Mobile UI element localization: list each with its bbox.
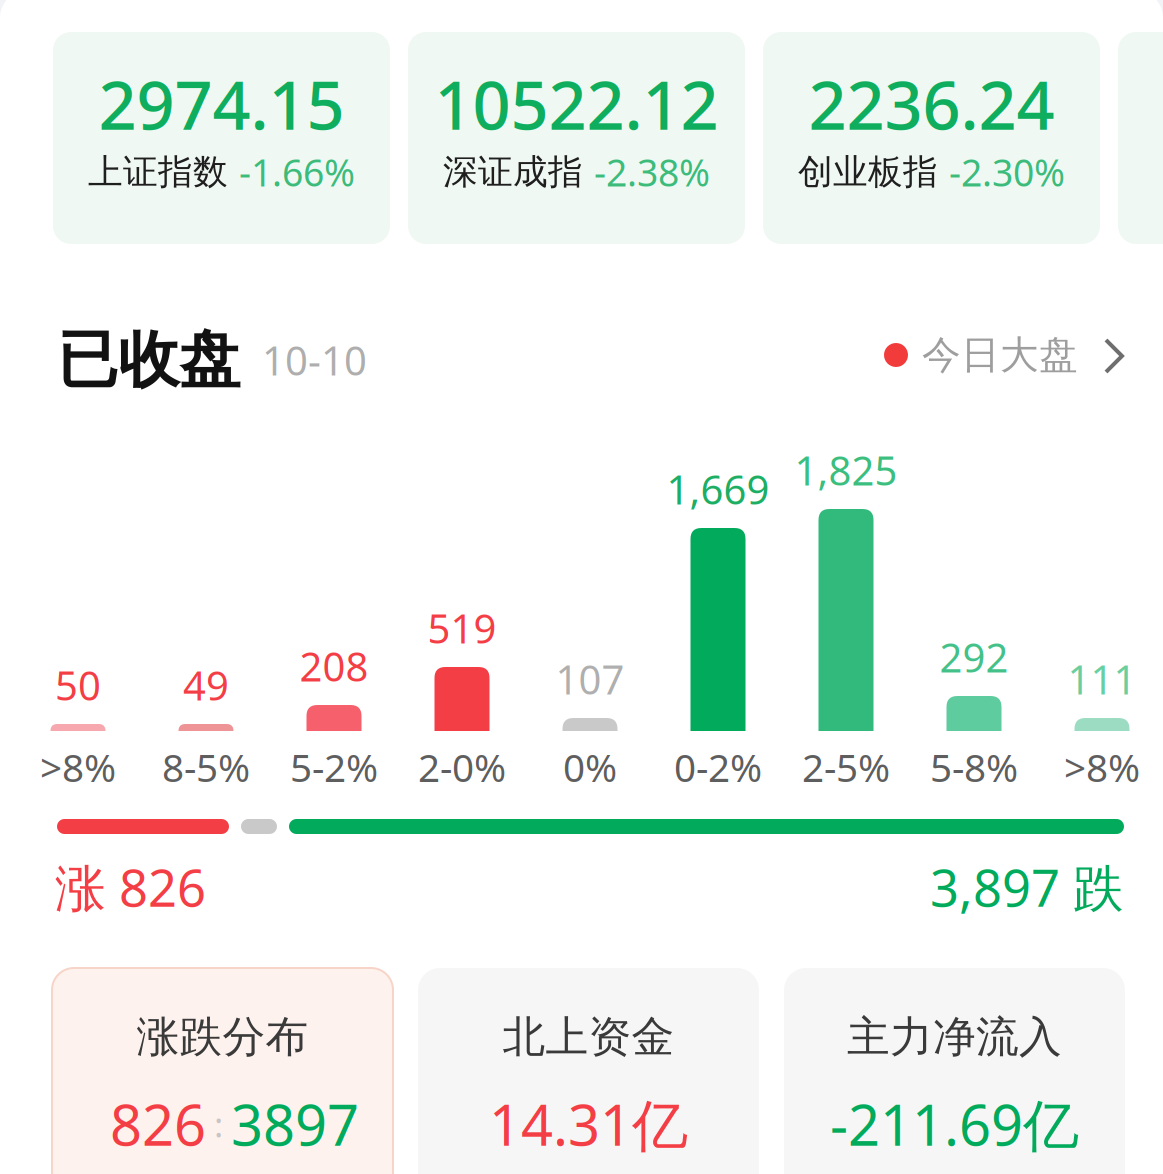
staticText: 8-5%: [162, 741, 250, 793]
staticText: 5-8%: [930, 741, 1018, 793]
staticText: 49: [183, 658, 229, 711]
button[interactable]: 2236.24: [763, 32, 1100, 244]
staticText: 2236.24: [808, 60, 1054, 148]
staticText: -2.30%: [949, 147, 1065, 197]
button[interactable]: 10522.12: [408, 32, 745, 244]
staticText: 111: [1067, 652, 1136, 705]
staticText: 深证成指: [443, 151, 583, 193]
staticText: 北上资金: [502, 1011, 674, 1063]
staticText: 826: [110, 1087, 206, 1161]
staticText: 2974.15: [98, 60, 344, 148]
staticText: >8%: [1064, 741, 1140, 793]
staticText: 5-2%: [290, 741, 378, 793]
staticText: 519: [427, 601, 496, 654]
staticText: 2-0%: [418, 741, 506, 793]
staticText: 1,825: [794, 443, 897, 496]
staticText: 107: [555, 652, 624, 705]
staticText: 已收盘: [57, 322, 240, 398]
staticText: 0-2%: [674, 741, 762, 793]
button[interactable]: 北上资金: [418, 968, 759, 1174]
staticText: 涨 826: [55, 853, 206, 921]
staticText: 今日大盘: [922, 331, 1078, 379]
staticText: 创业板指: [798, 151, 938, 193]
staticText: 3,897 跌: [930, 853, 1124, 921]
staticText: -211.69亿: [830, 1087, 1079, 1161]
staticText: 1,669: [666, 462, 769, 515]
staticText: 0%: [563, 741, 617, 793]
staticText: :: [214, 1101, 223, 1147]
staticText: >8%: [40, 741, 116, 793]
staticText: -2.38%: [594, 147, 710, 197]
staticText: 10-10: [262, 333, 367, 386]
staticText: 10522.12: [434, 60, 718, 148]
staticText: 上证指数: [88, 151, 228, 193]
staticText: 主力净流入: [847, 1011, 1062, 1063]
staticText: 292: [939, 630, 1008, 683]
button[interactable]: 主力净流入: [784, 968, 1125, 1174]
staticText: -1.66%: [239, 147, 355, 197]
button[interactable]: 涨跌分布: [52, 968, 393, 1174]
staticText: 涨跌分布: [136, 1011, 308, 1063]
button[interactable]: 今日大盘: [884, 336, 1124, 384]
staticText: 2-5%: [802, 741, 890, 793]
staticText: 14.31亿: [489, 1087, 688, 1161]
button[interactable]: 2974.15: [53, 32, 390, 244]
staticText: 208: [299, 639, 368, 692]
staticText: 3897: [231, 1087, 359, 1161]
staticText: 50: [55, 658, 101, 711]
